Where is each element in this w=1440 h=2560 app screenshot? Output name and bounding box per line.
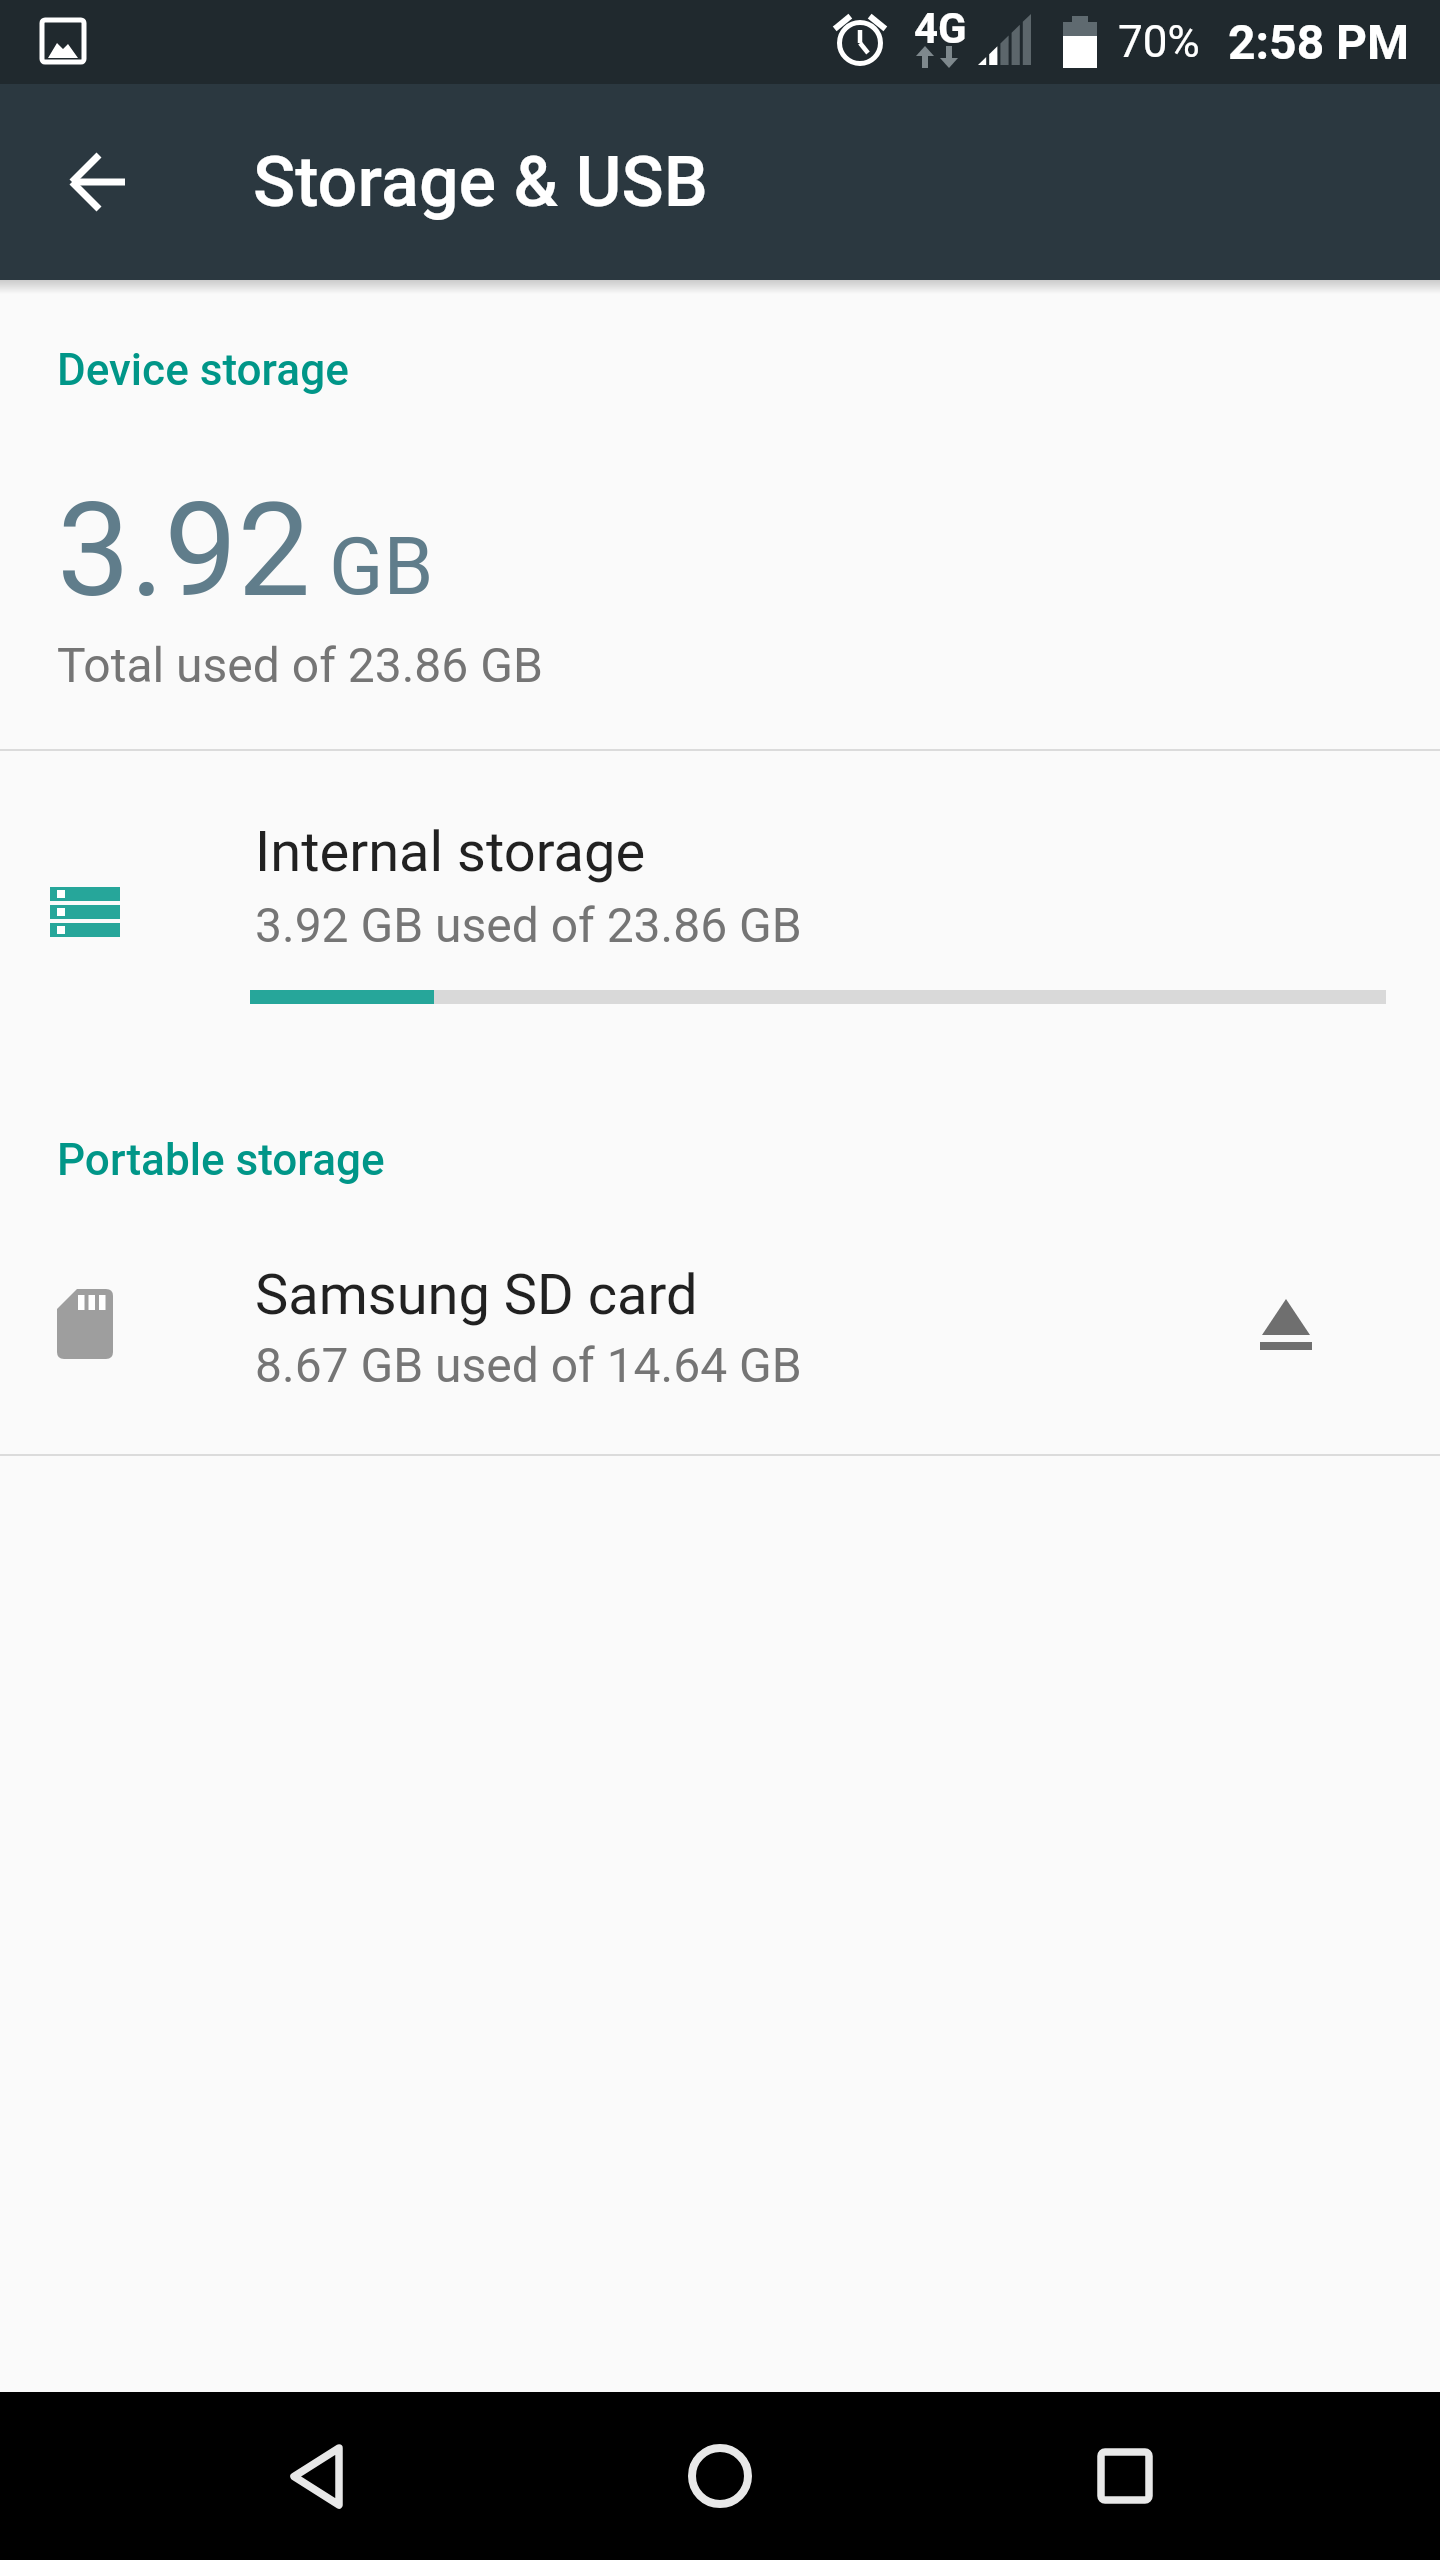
button[interactable] [38,122,158,242]
staticText: 70% [1118,16,1200,68]
staticText: Total used of 23.86 GB [57,637,543,693]
staticText: 3.92 GB used of 23.86 GB [255,897,802,953]
button[interactable] [1238,1284,1334,1364]
staticText: Internal storage [255,819,646,885]
staticText: 3.92 [57,474,311,626]
staticText: GB [329,520,434,614]
staticText: Storage & USB [253,141,708,223]
staticText: Portable storage [57,1134,385,1186]
button[interactable] [250,2404,382,2548]
staticText: Device storage [57,344,349,396]
staticText: 2:58 PM [1228,14,1410,70]
button[interactable] [654,2404,786,2548]
staticText: 4G [914,4,967,50]
button[interactable]: Internal storage [0,780,1440,1030]
staticText: 8.67 GB used of 14.64 GB [255,1337,802,1393]
staticText: Samsung SD card [255,1262,698,1328]
button[interactable]: Samsung SD card [0,1230,1440,1454]
button[interactable] [1059,2404,1191,2548]
